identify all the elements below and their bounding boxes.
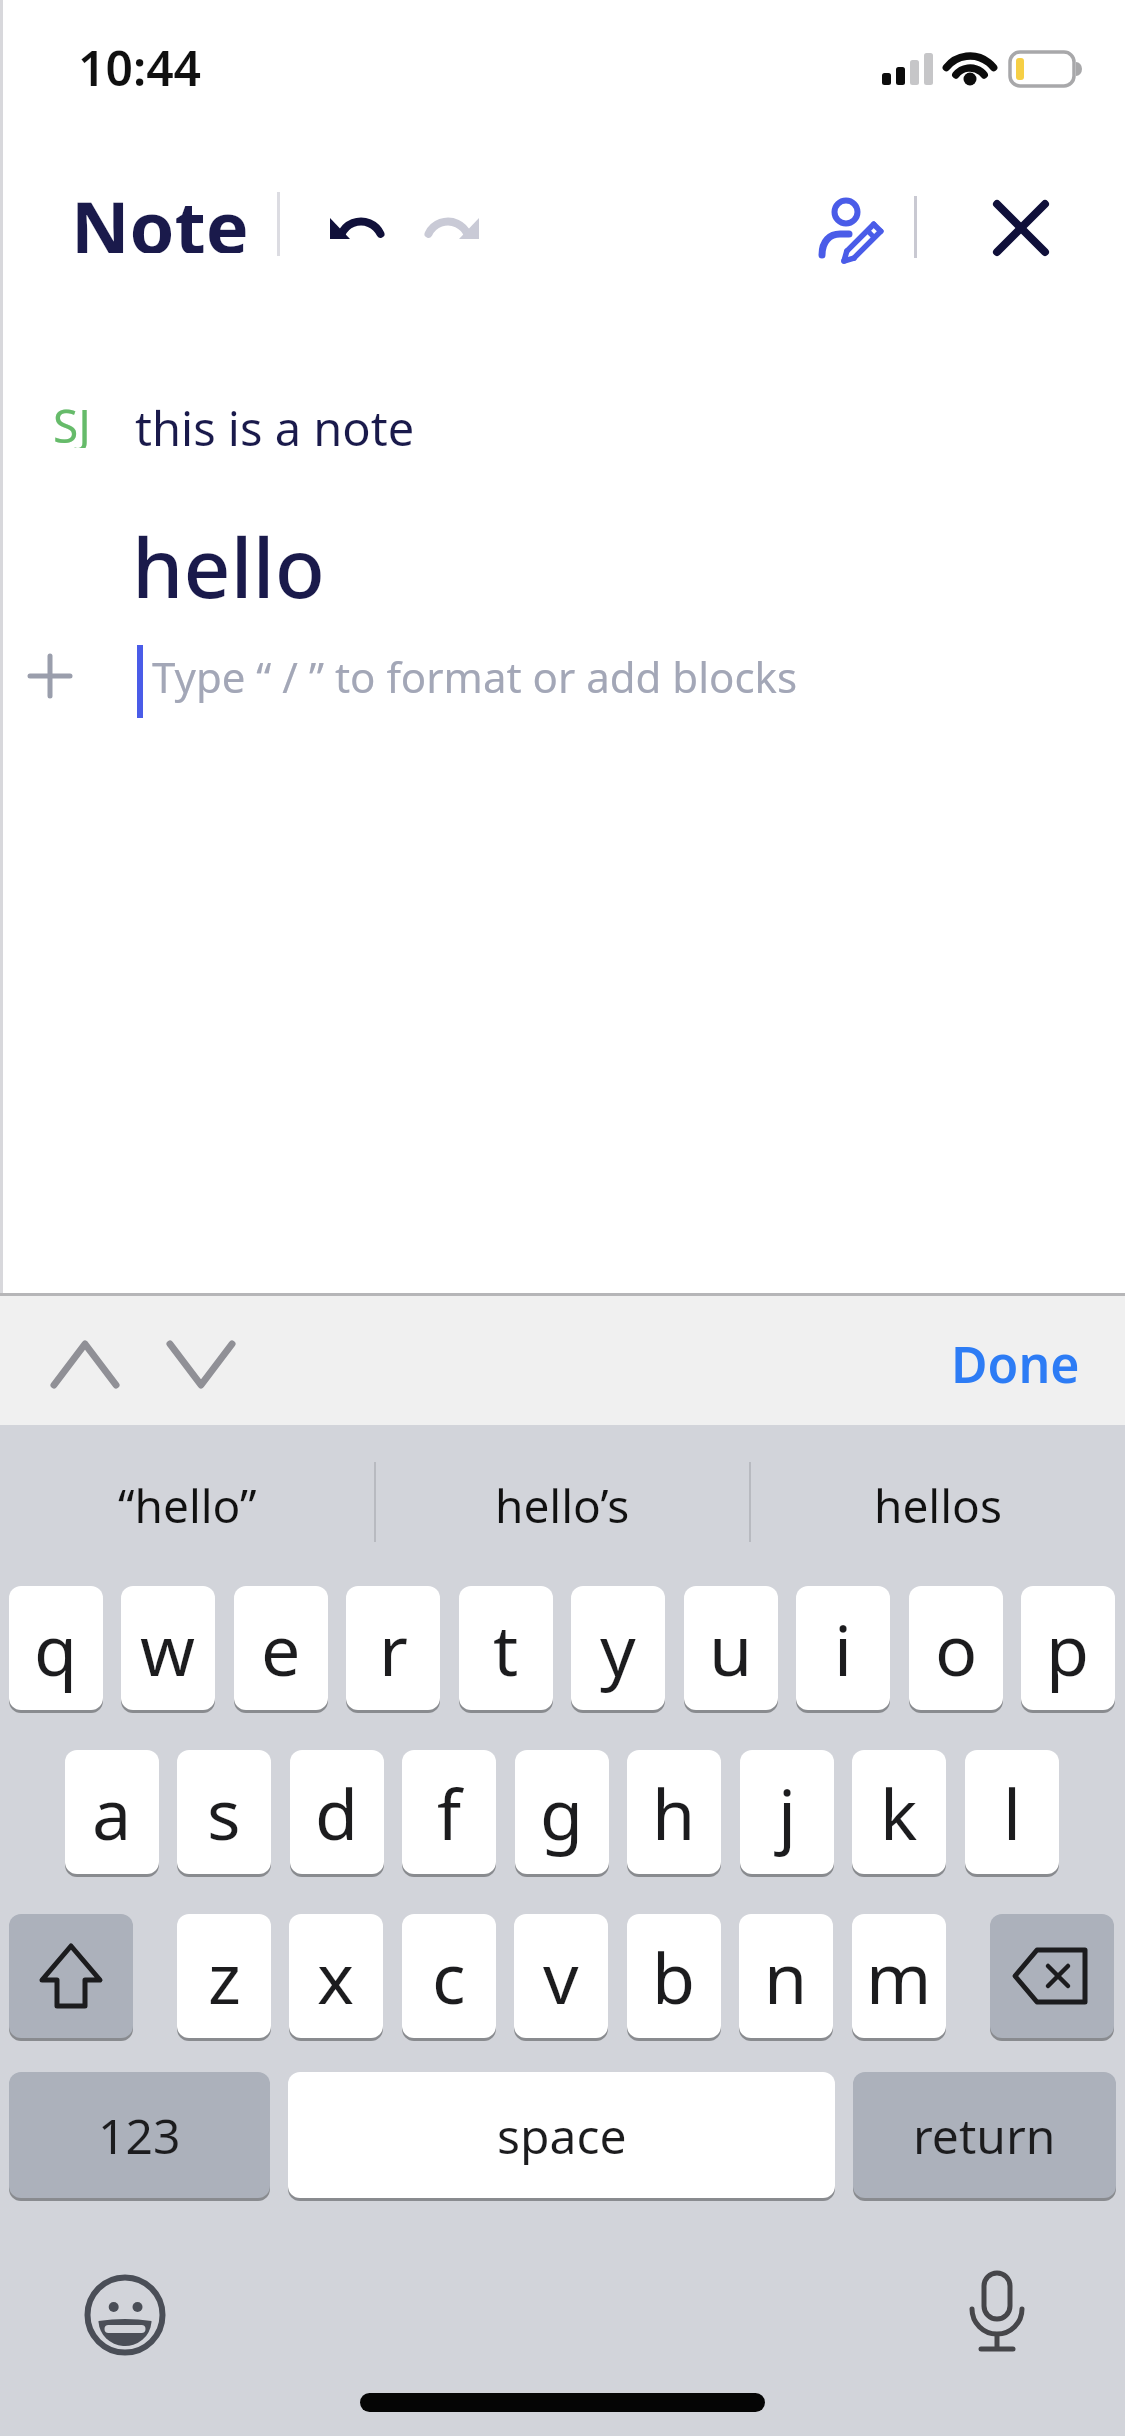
button[interactable]: j [740, 1750, 834, 1874]
button[interactable]: h [627, 1750, 721, 1874]
button[interactable]: k [852, 1750, 946, 1874]
button[interactable] [962, 2268, 1032, 2363]
button[interactable] [52, 1340, 122, 1390]
staticText: hello [132, 510, 325, 620]
staticText: c [432, 1929, 466, 2024]
staticText: Type “ / ” to format or add blocks [152, 648, 798, 704]
staticText: hello’s [495, 1474, 630, 1537]
staticText: j [778, 1765, 797, 1860]
staticText: w [140, 1601, 196, 1696]
staticText: n [764, 1929, 808, 2024]
button[interactable]: e [234, 1586, 328, 1710]
staticText: l [1003, 1765, 1022, 1860]
button[interactable]: z [177, 1914, 271, 2038]
button[interactable]: y [571, 1586, 665, 1710]
button[interactable]: s [177, 1750, 271, 1874]
button[interactable] [85, 2275, 165, 2357]
staticText: k [880, 1765, 918, 1860]
staticText: g [540, 1765, 584, 1860]
staticText: x [317, 1929, 355, 2024]
button[interactable]: d [290, 1750, 384, 1874]
staticText: m [866, 1929, 932, 2024]
button[interactable]: t [459, 1586, 553, 1710]
staticText: p [1046, 1601, 1090, 1696]
button[interactable] [990, 1914, 1114, 2038]
button[interactable] [990, 197, 1052, 259]
staticText: y [600, 1601, 636, 1696]
button[interactable] [415, 212, 485, 257]
button[interactable]: g [515, 1750, 609, 1874]
button[interactable]: x [289, 1914, 383, 2038]
button[interactable]: b [627, 1914, 721, 2038]
button[interactable]: f [402, 1750, 496, 1874]
button[interactable]: c [402, 1914, 496, 2038]
staticText: return [913, 2103, 1056, 2168]
button[interactable] [322, 212, 392, 257]
staticText: 10:44 [78, 35, 202, 97]
staticText: d [315, 1765, 359, 1860]
staticText: “hello” [118, 1474, 257, 1537]
button[interactable]: l [965, 1750, 1059, 1874]
staticText: this is a note [135, 396, 415, 450]
staticText: v [543, 1929, 579, 2024]
button[interactable]: space [288, 2072, 835, 2198]
staticText: f [437, 1765, 462, 1860]
staticText: r [379, 1601, 408, 1696]
button[interactable]: “hello” [0, 1460, 375, 1550]
button[interactable]: v [514, 1914, 608, 2038]
button[interactable]: a [65, 1750, 159, 1874]
staticText: space [497, 2103, 627, 2168]
button[interactable] [800, 185, 895, 275]
button[interactable]: i [796, 1586, 890, 1710]
staticText: u [709, 1601, 753, 1696]
button[interactable]: hellos [750, 1460, 1125, 1550]
staticText: b [652, 1929, 696, 2024]
button[interactable]: w [121, 1586, 215, 1710]
button[interactable]: r [346, 1586, 440, 1710]
button[interactable]: Note [71, 177, 311, 253]
staticText: o [935, 1601, 978, 1696]
button[interactable]: u [684, 1586, 778, 1710]
staticText: i [834, 1601, 853, 1696]
staticText: Note [71, 177, 249, 253]
button[interactable] [9, 1914, 133, 2038]
staticText: 123 [98, 2103, 181, 2168]
staticText: t [493, 1601, 519, 1696]
button[interactable]: p [1021, 1586, 1115, 1710]
button[interactable]: hello’s [375, 1460, 750, 1550]
button[interactable] [168, 1340, 238, 1390]
button[interactable]: n [739, 1914, 833, 2038]
staticText: SJ [53, 394, 91, 448]
staticText: a [92, 1765, 132, 1860]
staticText: q [34, 1601, 78, 1696]
staticText: z [208, 1929, 241, 2024]
staticText: h [652, 1765, 696, 1860]
staticText: s [207, 1765, 241, 1860]
staticText: Done [951, 1330, 1080, 1396]
staticText: hellos [874, 1474, 1002, 1537]
button[interactable]: q [9, 1586, 103, 1710]
button[interactable]: Done [890, 1330, 1080, 1396]
button[interactable]: return [853, 2072, 1116, 2198]
button[interactable]: 123 [9, 2072, 270, 2198]
staticText: e [261, 1601, 301, 1696]
button[interactable]: m [852, 1914, 946, 2038]
button[interactable]: o [909, 1586, 1003, 1710]
